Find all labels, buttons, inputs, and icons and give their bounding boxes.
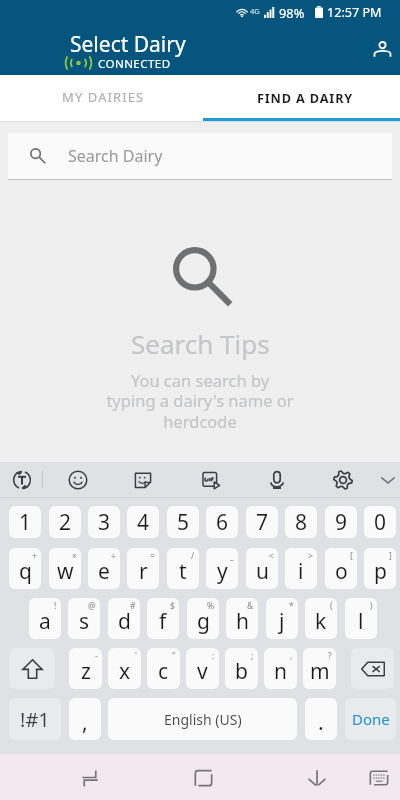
button[interactable]: FIND A DAIRY <box>205 75 400 121</box>
button[interactable]: . <box>305 698 337 740</box>
staticText: 3 <box>98 508 111 537</box>
button[interactable]: 4 <box>127 506 159 538</box>
button[interactable]: Back <box>295 755 339 799</box>
button[interactable]: f <box>147 598 179 639</box>
button[interactable]: Search Dairy <box>8 133 392 179</box>
button[interactable]: 3 <box>88 506 120 538</box>
button[interactable]: t <box>167 548 199 589</box>
staticText: a <box>39 607 51 636</box>
button[interactable]: GIF <box>195 464 227 496</box>
button[interactable]: r <box>127 548 159 589</box>
staticText: . <box>318 708 324 737</box>
button[interactable]: English (US) <box>108 698 297 740</box>
button[interactable]: 5 <box>167 506 199 538</box>
button[interactable]: Home <box>181 755 225 799</box>
staticText: # <box>130 600 136 612</box>
staticText: % <box>207 600 215 612</box>
button[interactable]: d <box>108 598 140 639</box>
staticText: ! <box>54 600 57 612</box>
button[interactable]: 0 <box>364 506 396 538</box>
button[interactable]: Emoji <box>62 464 94 496</box>
button[interactable]: 1 <box>9 506 41 538</box>
staticText: CONNECTED <box>98 56 171 72</box>
button[interactable]: l <box>345 598 377 639</box>
button[interactable]: Backspace <box>351 648 394 689</box>
staticText: ] <box>389 550 392 562</box>
staticText: v <box>197 657 208 686</box>
button[interactable]: 7 <box>246 506 278 538</box>
staticText: = <box>150 550 155 562</box>
staticText: n <box>274 657 287 686</box>
button[interactable]: Recents <box>68 755 112 799</box>
staticText: ; <box>251 650 254 662</box>
staticText: w <box>57 557 74 586</box>
button[interactable]: n <box>264 648 297 689</box>
button[interactable]: i <box>285 548 317 589</box>
button[interactable]: Translate <box>6 464 38 496</box>
button[interactable]: , <box>69 698 101 740</box>
staticText: Select Dairy <box>70 30 186 59</box>
staticText: _ <box>230 550 234 562</box>
button[interactable]: 6 <box>206 506 238 538</box>
button[interactable]: Collapse keyboard <box>372 464 400 496</box>
button[interactable]: Shift <box>9 648 55 689</box>
staticText: MY DAIRIES <box>62 88 145 106</box>
button[interactable]: Stickers <box>127 464 159 496</box>
staticText: 7 <box>256 508 269 537</box>
staticText: , <box>290 650 293 662</box>
button[interactable]: Done <box>345 698 396 740</box>
staticText: i <box>298 557 304 586</box>
staticText: @ <box>88 600 96 612</box>
button[interactable]: u <box>246 548 278 589</box>
staticText: 0 <box>374 508 387 537</box>
staticText: q <box>19 557 32 586</box>
button[interactable]: q <box>9 548 41 589</box>
button[interactable]: k <box>305 598 337 639</box>
button[interactable]: h <box>226 598 258 639</box>
button[interactable]: b <box>225 648 258 689</box>
staticText: You can search by typing a dairy's name … <box>106 369 294 433</box>
button[interactable]: e <box>88 548 120 589</box>
staticText: Search Tips <box>131 326 270 361</box>
button[interactable]: z <box>69 648 102 689</box>
staticText: FIND A DAIRY <box>257 89 354 106</box>
button[interactable]: 2 <box>49 506 81 538</box>
button[interactable]: g <box>187 598 219 639</box>
staticText: o <box>335 557 348 586</box>
staticText: d <box>118 607 131 636</box>
staticText: 8 <box>295 508 308 537</box>
staticText: y <box>217 557 228 586</box>
button[interactable]: Voice input <box>261 464 293 496</box>
button[interactable]: 9 <box>325 506 357 538</box>
button[interactable]: m <box>303 648 336 689</box>
button[interactable]: x <box>108 648 141 689</box>
staticText: l <box>358 607 364 636</box>
staticText: c <box>158 657 169 686</box>
staticText: & <box>247 600 254 612</box>
staticText: 9 <box>335 508 348 537</box>
button[interactable]: c <box>147 648 180 689</box>
staticText: k <box>315 607 327 636</box>
button[interactable]: MY DAIRIES <box>3 75 203 121</box>
staticText: u <box>256 557 269 586</box>
button[interactable]: j <box>266 598 298 639</box>
button[interactable]: !#1 <box>9 698 61 740</box>
staticText: 2 <box>59 508 72 537</box>
button[interactable]: Account <box>360 27 400 71</box>
staticText: s <box>79 607 90 636</box>
button[interactable]: a <box>29 598 61 639</box>
button[interactable]: p <box>364 548 396 589</box>
staticText: g <box>197 607 210 636</box>
staticText: !#1 <box>20 706 50 733</box>
button[interactable]: v <box>186 648 219 689</box>
button[interactable]: Settings <box>327 464 359 496</box>
staticText: ÷ <box>111 550 116 562</box>
button[interactable]: w <box>49 548 81 589</box>
button[interactable]: y <box>206 548 238 589</box>
button[interactable]: o <box>325 548 357 589</box>
staticText: / <box>191 550 195 562</box>
button[interactable]: s <box>68 598 100 639</box>
staticText: : <box>212 650 215 662</box>
button[interactable]: Hide keyboard <box>357 755 400 799</box>
button[interactable]: 8 <box>285 506 317 538</box>
